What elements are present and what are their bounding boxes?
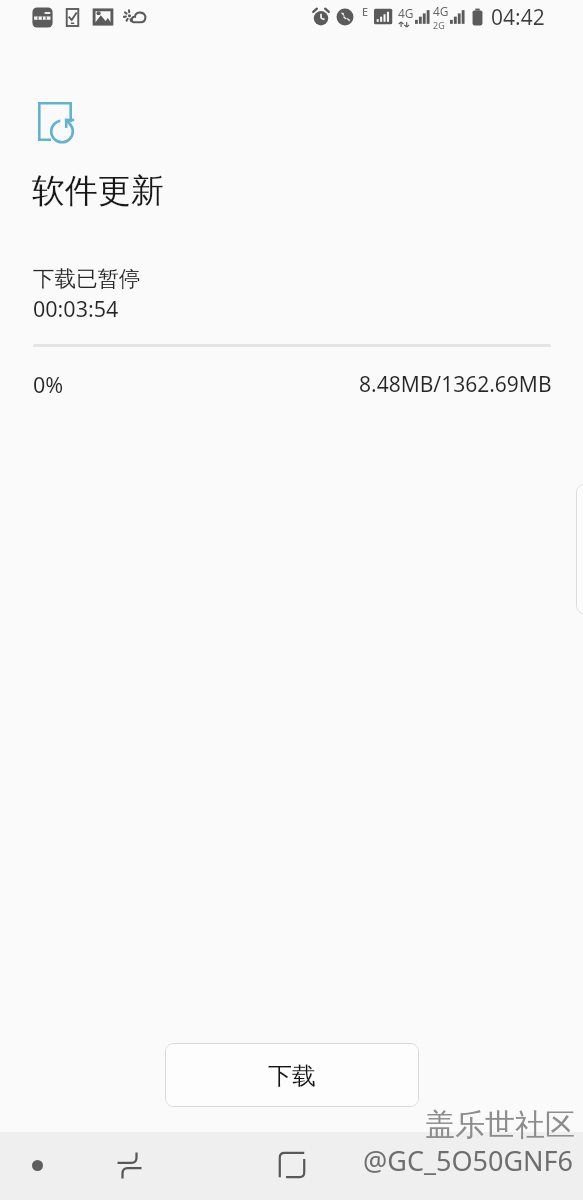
staticText: E bbox=[362, 4, 369, 19]
staticText: 下载已暂停 bbox=[33, 265, 141, 292]
other: Software update bbox=[34, 96, 82, 144]
button[interactable]: Recent apps bbox=[105, 1141, 153, 1189]
staticText: 04:42 bbox=[491, 3, 545, 32]
staticText: 盖乐世社区 bbox=[425, 1106, 575, 1144]
staticText: 0% bbox=[33, 370, 64, 399]
button[interactable]: Edge panel handle bbox=[576, 484, 583, 614]
button[interactable]: 下载 bbox=[165, 1043, 419, 1107]
staticText: @GC_5O50GNF6 bbox=[363, 1142, 574, 1179]
staticText: 4G bbox=[398, 5, 414, 21]
staticText: 00:03:54 bbox=[33, 294, 119, 323]
button[interactable]: Home bbox=[268, 1141, 316, 1189]
staticText: 2G bbox=[433, 19, 445, 31]
staticText: 软件更新 bbox=[32, 170, 164, 212]
staticText: 下载 bbox=[268, 1061, 316, 1091]
staticText: 4G bbox=[433, 3, 449, 19]
staticText: 8.48MB/1362.69MB bbox=[359, 370, 552, 399]
button[interactable]: More options bbox=[13, 1141, 61, 1189]
